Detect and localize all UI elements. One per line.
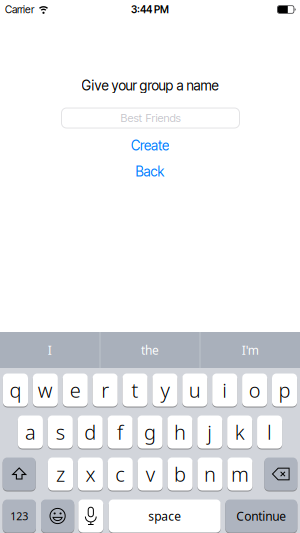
button[interactable]: Dictation [78,499,103,533]
button[interactable]: Back [135,163,164,180]
button[interactable]: Group name [61,108,239,128]
staticText: i [222,377,227,403]
staticText: q [9,377,21,403]
staticText: k [235,419,245,445]
staticText: a [25,419,36,445]
button[interactable]: f [108,415,133,449]
button[interactable]: the [100,332,199,368]
staticText: d [84,419,96,445]
button[interactable]: w [33,373,58,407]
staticText: space [148,508,181,524]
staticText: r [101,377,109,403]
staticText: n [204,461,216,487]
button[interactable]: Numbers [3,499,36,533]
button[interactable]: i [212,373,237,407]
button[interactable]: s [48,415,73,449]
button[interactable]: h [167,415,192,449]
button[interactable]: Continue [225,499,297,533]
button[interactable]: o [242,373,267,407]
button[interactable]: I [0,332,99,368]
staticText: Create [131,137,169,154]
button[interactable]: j [197,415,222,449]
staticText: w [38,377,53,403]
staticText: I'm [242,342,259,358]
staticText: Carrier [5,3,34,16]
staticText: Continue [236,508,286,524]
button[interactable]: v [138,457,163,491]
button[interactable]: Shift [3,457,36,491]
staticText: I [48,342,52,358]
button[interactable]: k [227,415,252,449]
staticText: e [70,377,81,403]
button[interactable]: I'm [200,332,300,368]
button[interactable]: Emoji [41,499,74,533]
staticText: t [132,377,139,403]
button[interactable]: a [18,415,43,449]
staticText: j [207,419,212,445]
button[interactable]: x [78,457,103,491]
button[interactable]: e [63,373,88,407]
staticText: Back [135,163,164,180]
button[interactable]: p [272,373,297,407]
staticText: p [279,377,291,403]
staticText: h [174,419,186,445]
staticText: Best Friends [120,111,180,125]
button[interactable]: c [108,457,133,491]
button[interactable]: g [137,415,163,449]
button[interactable]: b [168,457,193,491]
button[interactable]: r [93,373,118,407]
staticText: 3:44 PM [131,3,169,16]
button[interactable]: d [78,415,103,449]
staticText: g [144,419,156,445]
button[interactable]: l [257,415,282,449]
button[interactable]: space [109,499,221,533]
button[interactable]: t [122,373,148,407]
button[interactable]: u [182,373,207,407]
staticText: 123 [10,509,28,523]
staticText: c [115,461,125,487]
button[interactable]: Delete [264,457,297,491]
staticText: Give your group a name [81,77,218,94]
button[interactable]: z [48,457,73,491]
staticText: m [231,461,249,487]
button[interactable]: q [3,373,28,407]
button[interactable]: y [152,373,177,407]
staticText: y [160,377,169,403]
button[interactable]: n [197,457,222,491]
staticText: the [141,342,159,358]
staticText: f [117,419,123,445]
staticText: z [56,461,65,487]
staticText: b [174,461,186,487]
staticText: o [249,377,261,403]
staticText: v [146,461,155,487]
button[interactable]: Create [131,137,169,154]
button[interactable]: m [227,457,252,491]
staticText: l [267,419,272,445]
staticText: s [56,419,65,445]
staticText: u [189,377,201,403]
staticText: x [85,461,95,487]
